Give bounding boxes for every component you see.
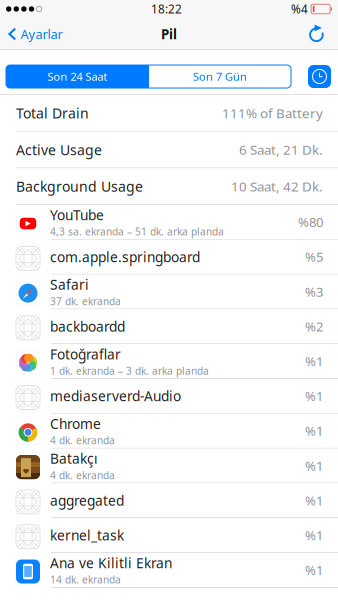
staticText: 4 dk. ekranda	[50, 468, 115, 482]
button[interactable]: Son 24 Saat	[6, 65, 149, 88]
staticText: 14 dk. ekranda	[50, 573, 121, 586]
staticText: kernel_task	[50, 526, 124, 544]
staticText: Fotoğraflar	[50, 345, 121, 363]
staticText: Son 7 Gün	[193, 69, 247, 84]
staticText: backboardd	[50, 317, 125, 336]
button[interactable]: Fotoğraflar	[0, 344, 338, 378]
staticText: %4	[291, 1, 308, 17]
button[interactable]: mediaserverd-Audio	[0, 379, 338, 413]
staticText: Ana ve Kilitli Ekran	[50, 553, 172, 572]
button[interactable]: Battery usage history	[308, 65, 331, 88]
button[interactable]: Son 7 Gün	[149, 65, 291, 88]
staticText: %2	[305, 317, 323, 335]
staticText: 37 dk. ekranda	[50, 294, 121, 308]
staticText: mediaserverd-Audio	[50, 387, 181, 405]
button[interactable]: aggregated	[0, 483, 338, 517]
staticText: Chrome	[50, 414, 101, 433]
staticText: Ayarlar	[21, 25, 63, 43]
staticText: %3	[305, 283, 323, 300]
staticText: Batakçı	[50, 449, 98, 468]
staticText: 4,3 sa. ekranda – 51 dk. arka planda	[50, 225, 224, 238]
staticText: %1	[305, 491, 323, 509]
staticText: 18:22	[151, 1, 182, 17]
staticText: 10 Saat, 42 Dk.	[231, 177, 323, 195]
staticText: %1	[305, 387, 323, 405]
staticText: aggregated	[50, 491, 124, 510]
staticText: Background Usage	[16, 177, 143, 196]
staticText: %1	[305, 561, 323, 579]
staticText: %1	[305, 352, 323, 370]
button[interactable]: Safari	[0, 274, 338, 309]
staticText: Son 24 Saat	[47, 69, 107, 84]
staticText: 6 Saat, 21 Dk.	[239, 141, 323, 159]
staticText: %1	[305, 457, 323, 474]
staticText: com.apple.springboard	[50, 247, 200, 266]
staticText: Pil	[161, 25, 177, 43]
staticText: %80	[298, 213, 323, 231]
button[interactable]: Batakçı	[0, 448, 338, 483]
button[interactable]: Chrome	[0, 414, 338, 448]
staticText: %5	[305, 248, 323, 266]
staticText: 4 dk. ekranda	[50, 433, 115, 447]
staticText: %1	[305, 422, 323, 440]
staticText: 1 dk. ekranda – 3 dk. arka planda	[50, 364, 209, 378]
staticText: 111% of Battery	[222, 104, 323, 122]
button[interactable]: YouTube	[0, 205, 338, 239]
button[interactable]: backboardd	[0, 309, 338, 343]
button[interactable]: Ayarlar	[0, 18, 71, 50]
button[interactable]: kernel_task	[0, 518, 338, 552]
staticText: YouTube	[50, 205, 104, 224]
staticText: Safari	[50, 275, 89, 294]
staticText: Total Drain	[16, 104, 89, 123]
staticText: %1	[305, 526, 323, 544]
button[interactable]: Refresh	[301, 18, 333, 50]
button[interactable]: Ana ve Kilitli Ekran	[0, 553, 338, 587]
button[interactable]: com.apple.springboard	[0, 240, 338, 274]
staticText: Active Usage	[16, 140, 102, 159]
